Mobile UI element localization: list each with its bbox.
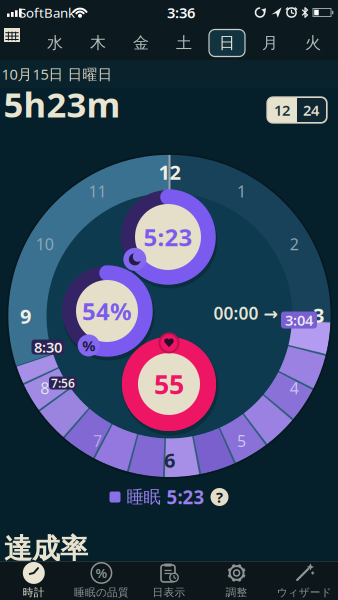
staticText: 12 — [158, 159, 180, 185]
staticText: 時計 — [23, 586, 45, 599]
staticText: 5:23 — [166, 485, 204, 509]
staticText: 00:00 → — [213, 301, 278, 324]
button[interactable]: 水 — [35, 28, 75, 58]
staticText: 土 — [176, 33, 192, 53]
staticText: SoftBank — [19, 4, 75, 21]
staticText: % — [95, 564, 107, 582]
staticText: 12 — [274, 100, 290, 120]
button[interactable]: % — [68, 561, 135, 599]
staticText: 睡眠の品質 — [74, 586, 129, 599]
staticText: 8 — [40, 377, 49, 399]
staticText: 10 — [36, 233, 54, 255]
staticText: 水 — [47, 33, 63, 53]
staticText: 達成率 — [4, 532, 88, 566]
staticText: 10月15日 日曜日 — [1, 64, 112, 84]
staticText: ? — [216, 487, 223, 507]
staticText: 5h23m — [3, 81, 120, 127]
button[interactable]: 時計 — [0, 561, 67, 599]
button[interactable]: 土 — [164, 28, 204, 58]
button[interactable]: ウィザード — [271, 561, 338, 599]
staticText: 7 — [93, 430, 102, 451]
staticText: 24 — [303, 100, 319, 120]
staticText: 3:04 — [285, 310, 313, 330]
staticText: 金 — [133, 33, 149, 53]
staticText: 11 — [88, 181, 106, 202]
staticText: 木 — [90, 33, 106, 53]
button[interactable]: カレンダー — [6, 28, 36, 58]
button[interactable]: 月 — [250, 28, 290, 58]
staticText: 55 — [154, 366, 184, 402]
staticText: 8:30 — [34, 337, 62, 357]
staticText: 54% — [82, 295, 132, 327]
staticText: 調整 — [226, 586, 248, 599]
button[interactable]: 木 — [78, 28, 118, 58]
button[interactable]: 調整 — [203, 561, 270, 599]
staticText: 月 — [262, 33, 278, 53]
staticText: ウィザード — [277, 586, 332, 599]
button[interactable]: 日表示 — [135, 561, 202, 599]
staticText: 日 — [219, 33, 235, 53]
staticText: 睡眠 — [126, 486, 160, 508]
staticText: 4 — [290, 377, 299, 399]
staticText: % — [82, 336, 95, 355]
staticText: 2 — [290, 233, 299, 255]
button[interactable]: 火 — [293, 28, 333, 58]
button[interactable]: ヘルプ — [210, 488, 228, 506]
button[interactable]: 24 — [296, 97, 326, 123]
button[interactable]: 日 — [207, 28, 247, 58]
staticText: 3:36 — [167, 3, 195, 22]
staticText: 5 — [237, 430, 246, 451]
button[interactable]: 金 — [121, 28, 161, 58]
staticText: 3 — [313, 302, 324, 328]
staticText: 火 — [305, 33, 321, 53]
staticText: 1 — [237, 181, 246, 202]
staticText: 7:56 — [51, 375, 75, 391]
staticText: 日表示 — [152, 586, 185, 599]
staticText: 5:23 — [143, 221, 192, 253]
staticText: 9 — [20, 303, 31, 329]
button[interactable]: 12 — [267, 97, 297, 123]
staticText: 6 — [164, 447, 175, 473]
